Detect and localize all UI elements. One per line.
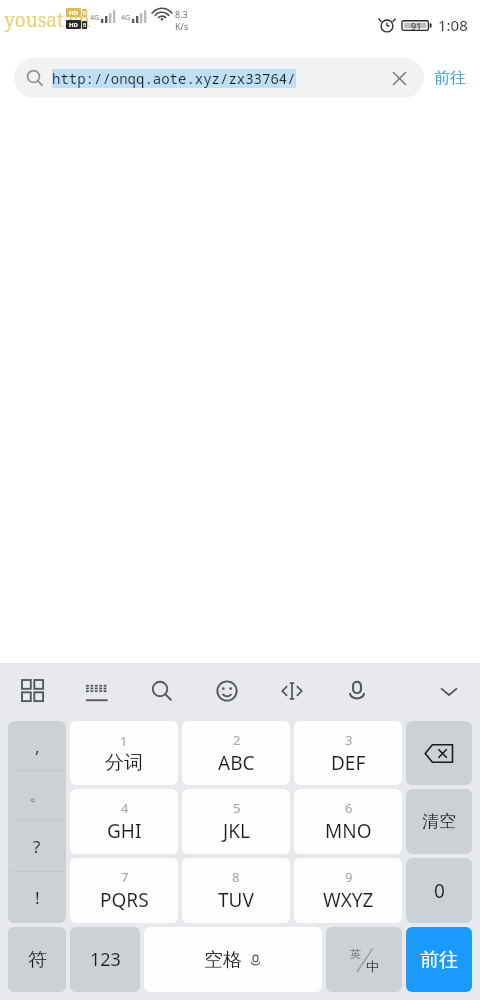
staticText: ! <box>35 886 40 909</box>
button[interactable]: 4 <box>70 789 178 854</box>
staticText: 。 <box>30 787 44 805</box>
staticText: B <box>83 10 87 17</box>
staticText: ABC <box>218 750 255 776</box>
button[interactable]: 清空 <box>406 789 472 854</box>
staticText: 1 <box>120 732 128 750</box>
button[interactable]: 5 <box>182 789 290 854</box>
staticText: ? <box>33 835 41 858</box>
button[interactable]: 前往 <box>434 68 466 88</box>
button[interactable]: http://onqq.aote.xyz/zx33764/ <box>14 58 424 98</box>
staticText: 分词 <box>105 751 143 775</box>
staticText: 4 <box>121 799 129 817</box>
staticText: HD <box>69 9 78 17</box>
staticText: 6 <box>345 799 353 817</box>
staticText: 2 <box>233 731 241 749</box>
button[interactable]: Emoji <box>210 674 244 708</box>
staticText: PQRS <box>100 887 149 913</box>
button[interactable]: 6 <box>294 789 402 854</box>
staticText: http://onqq.aote.xyz/zx33764/ <box>52 69 296 88</box>
button[interactable]: Edit text <box>275 674 309 708</box>
staticText: 4G <box>90 13 100 23</box>
staticText: 清空 <box>422 811 456 832</box>
button[interactable]: Keyboard <box>80 674 114 708</box>
button[interactable]: Voice input <box>340 674 374 708</box>
button[interactable]: ! <box>8 872 66 923</box>
staticText: 91 <box>411 20 422 32</box>
button[interactable]: Clear <box>386 65 412 91</box>
staticText: GHI <box>107 818 142 844</box>
button[interactable]: 空格 <box>144 927 322 992</box>
staticText: WXYZ <box>323 887 374 913</box>
button[interactable]: 7 <box>70 858 178 923</box>
staticText: TUV <box>218 887 254 913</box>
staticText: 符 <box>28 948 47 972</box>
staticText: 8.3 <box>175 8 188 20</box>
staticText: B <box>83 22 87 29</box>
button[interactable]: 3 <box>294 721 402 785</box>
button[interactable]: Keyboard layouts <box>16 674 50 708</box>
staticText: 前往 <box>434 68 466 88</box>
staticText: 英 <box>350 947 361 961</box>
staticText: 0 <box>434 878 445 904</box>
button[interactable]: Search <box>145 674 179 708</box>
staticText: 7 <box>121 868 129 886</box>
button[interactable]: Hide keyboard <box>432 674 466 708</box>
button[interactable]: 9 <box>294 858 402 923</box>
button[interactable]: 8 <box>182 858 290 923</box>
staticText: HD <box>69 21 78 29</box>
staticText: 5 <box>233 799 241 817</box>
staticText: 中 <box>366 958 379 974</box>
staticText: yousat.cn <box>4 7 91 33</box>
button[interactable]: 符 <box>8 927 66 992</box>
button[interactable]: 1 <box>70 721 178 785</box>
button[interactable]: 2 <box>182 721 290 785</box>
staticText: 前往 <box>420 948 458 972</box>
button[interactable]: 123 <box>70 927 140 992</box>
staticText: 123 <box>90 947 121 972</box>
button[interactable]: 英 <box>326 927 402 992</box>
button[interactable]: 前往 <box>406 927 472 992</box>
staticText: DEF <box>331 750 366 776</box>
button[interactable]: , <box>8 721 66 771</box>
staticText: 3 <box>345 731 353 749</box>
button[interactable]: 0 <box>406 858 472 923</box>
staticText: MNO <box>325 818 372 844</box>
staticText: 8 <box>232 868 240 886</box>
button[interactable]: Backspace <box>406 721 472 785</box>
staticText: JKL <box>223 818 250 844</box>
staticText: K/s <box>175 20 189 32</box>
staticText: 4G <box>121 13 131 23</box>
button[interactable]: ? <box>8 821 66 872</box>
staticText: , <box>35 735 40 758</box>
staticText: 空格 <box>204 948 242 972</box>
staticText: 9 <box>345 868 353 886</box>
button[interactable]: 。 <box>8 771 66 821</box>
staticText: 1:08 <box>438 15 468 35</box>
